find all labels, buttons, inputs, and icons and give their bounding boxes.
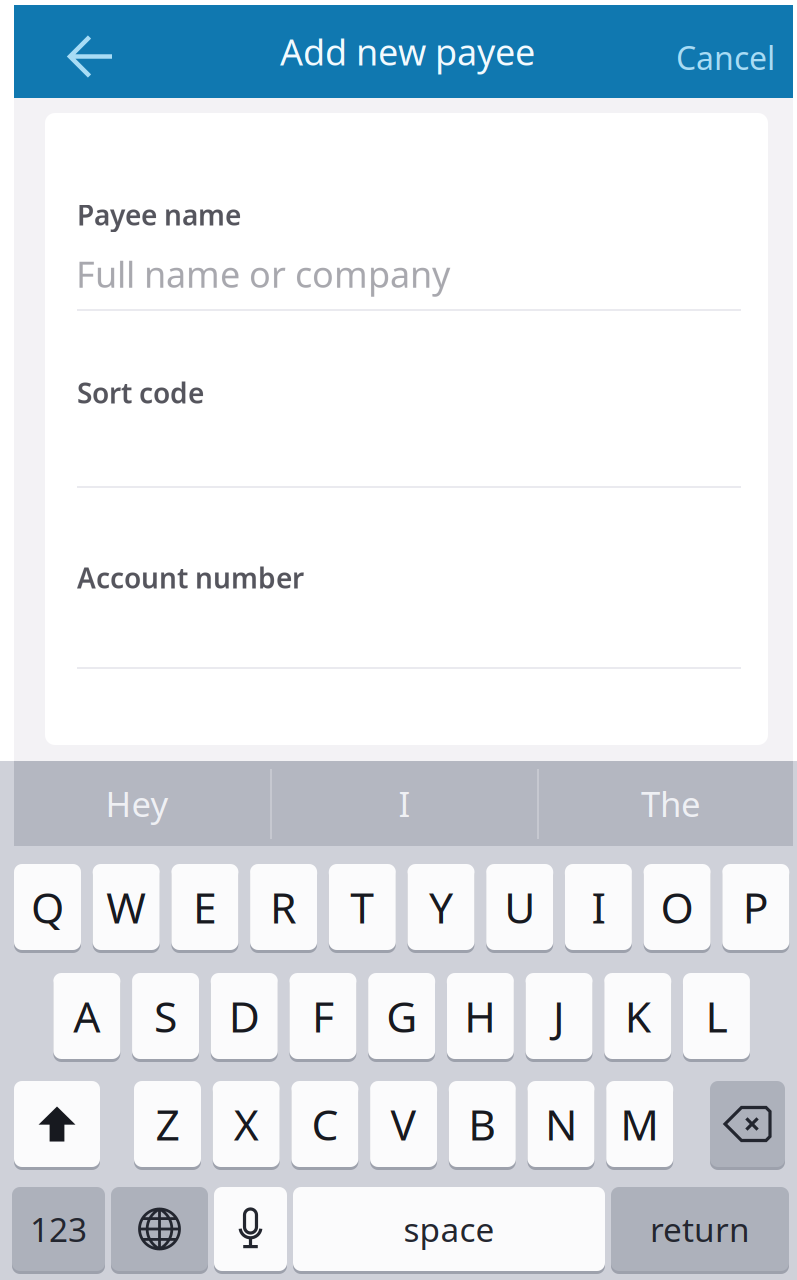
button[interactable]: B [449, 1081, 516, 1170]
staticText: Cancel [676, 36, 775, 79]
staticText: Full name or company [76, 250, 450, 298]
staticText: G [386, 988, 417, 1044]
staticText: T [350, 879, 374, 935]
staticText: A [73, 988, 100, 1044]
button[interactable]: M [606, 1081, 673, 1170]
button[interactable]: N [527, 1081, 594, 1170]
staticText: Hey [105, 780, 168, 826]
staticText: F [312, 988, 334, 1044]
staticText: S [154, 988, 177, 1044]
staticText: Add new payee [280, 28, 535, 75]
button[interactable]: S [132, 973, 199, 1062]
button[interactable]: Next keyboard [111, 1187, 208, 1274]
button[interactable]: The [544, 761, 797, 846]
button[interactable]: J [525, 973, 592, 1062]
staticText: V [391, 1096, 417, 1152]
button[interactable]: L [683, 973, 750, 1062]
button[interactable]: K [604, 973, 671, 1062]
button[interactable]: I [565, 864, 632, 953]
button[interactable]: G [368, 973, 435, 1062]
button[interactable]: Dictation [214, 1187, 287, 1274]
staticText: C [311, 1096, 338, 1152]
button[interactable]: Q [14, 864, 81, 953]
staticText: O [661, 879, 694, 935]
button[interactable]: return [611, 1187, 789, 1274]
staticText: R [270, 879, 297, 935]
staticText: X [234, 1096, 259, 1152]
staticText: 123 [30, 1207, 87, 1251]
button[interactable]: D [211, 973, 278, 1062]
button[interactable]: Y [407, 864, 474, 953]
staticText: N [545, 1096, 577, 1152]
button[interactable]: space [293, 1187, 605, 1274]
staticText: Z [155, 1096, 179, 1152]
staticText: Q [31, 879, 64, 935]
staticText: L [705, 988, 727, 1044]
button[interactable]: R [250, 864, 317, 953]
staticText: H [464, 988, 496, 1044]
button[interactable]: C [291, 1081, 358, 1170]
staticText: D [229, 988, 260, 1044]
button[interactable]: H [447, 973, 514, 1062]
staticText: space [403, 1207, 494, 1251]
staticText: U [504, 879, 535, 935]
button[interactable]: T [329, 864, 396, 953]
button[interactable]: X [213, 1081, 280, 1170]
staticText: J [553, 988, 565, 1044]
button[interactable]: Shift [14, 1081, 100, 1170]
button[interactable]: Z [134, 1081, 201, 1170]
staticText: B [468, 1096, 496, 1152]
staticText: Payee name [77, 196, 241, 233]
staticText: return [650, 1207, 750, 1251]
button[interactable]: Cancel [635, 11, 791, 104]
staticText: I [398, 780, 410, 826]
button[interactable]: 123 [12, 1187, 105, 1274]
button[interactable]: V [370, 1081, 437, 1170]
button[interactable]: F [289, 973, 356, 1062]
staticText: Sort code [77, 374, 204, 411]
button[interactable]: P [722, 864, 789, 953]
staticText: I [591, 879, 605, 935]
staticText: The [641, 780, 701, 826]
button[interactable]: E [171, 864, 238, 953]
staticText: M [620, 1096, 659, 1152]
staticText: P [743, 879, 769, 935]
staticText: K [625, 988, 651, 1044]
staticText: E [193, 879, 217, 935]
button[interactable]: U [486, 864, 553, 953]
button[interactable]: Back [35, 10, 147, 103]
button[interactable]: Delete [710, 1081, 785, 1170]
button[interactable]: I [272, 761, 537, 846]
button[interactable]: O [644, 864, 711, 953]
button[interactable]: W [93, 864, 160, 953]
staticText: Y [429, 879, 453, 935]
button[interactable]: A [53, 973, 120, 1062]
staticText: Account number [77, 559, 304, 596]
staticText: W [106, 879, 146, 935]
button[interactable]: Hey [9, 761, 265, 846]
